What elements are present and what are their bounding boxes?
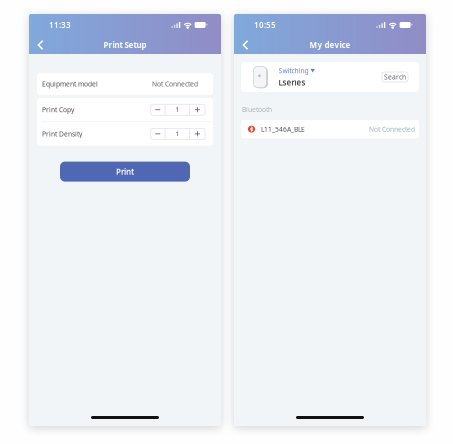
staticText: Switching [278, 66, 308, 75]
staticText: 1 [175, 105, 179, 114]
staticText: 11:33 [49, 20, 71, 30]
button[interactable]: Search [382, 72, 408, 82]
staticText: L11_546A_BLE [261, 125, 305, 134]
button[interactable]: L11_546A_BLE [241, 120, 419, 138]
button[interactable]: Increase [190, 104, 205, 115]
button[interactable]: Back [235, 37, 255, 53]
staticText: Print Density [42, 129, 82, 138]
staticText: Not Connected [369, 125, 415, 134]
staticText: Print Setup [103, 40, 146, 50]
staticText: Equipment model [42, 80, 98, 88]
button[interactable]: Decrease [151, 104, 165, 115]
button[interactable]: Back [30, 37, 50, 53]
staticText: 10:55 [254, 20, 276, 30]
staticText: Print Copy [42, 105, 74, 114]
button[interactable]: Equipment model [37, 73, 213, 95]
staticText: Bluetooth [242, 105, 272, 114]
staticText: Print [116, 166, 134, 177]
staticText: Lseries [278, 77, 305, 88]
button[interactable]: Increase [190, 128, 205, 139]
staticText: Search [384, 73, 406, 81]
button[interactable]: Print [60, 162, 190, 182]
button[interactable]: Decrease [151, 128, 165, 139]
staticText: Not Connected [152, 80, 198, 88]
staticText: 1 [175, 129, 179, 138]
staticText: My device [309, 40, 350, 50]
